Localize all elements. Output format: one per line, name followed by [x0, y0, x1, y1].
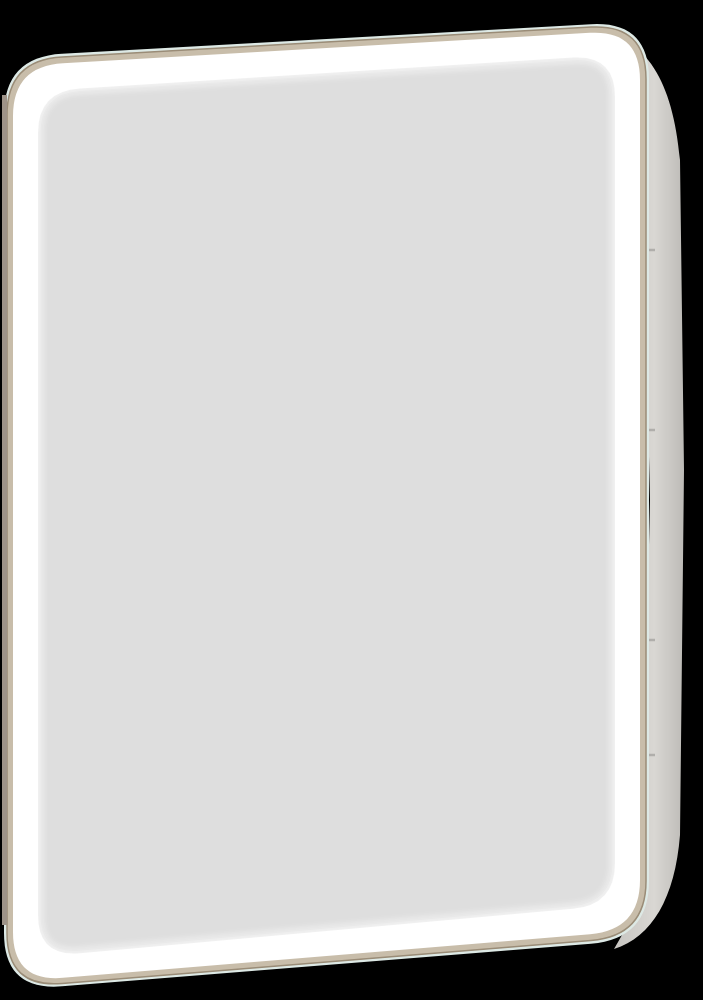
button[interactable]: Illuminated LED mirror cabinet	[0, 0, 703, 1000]
